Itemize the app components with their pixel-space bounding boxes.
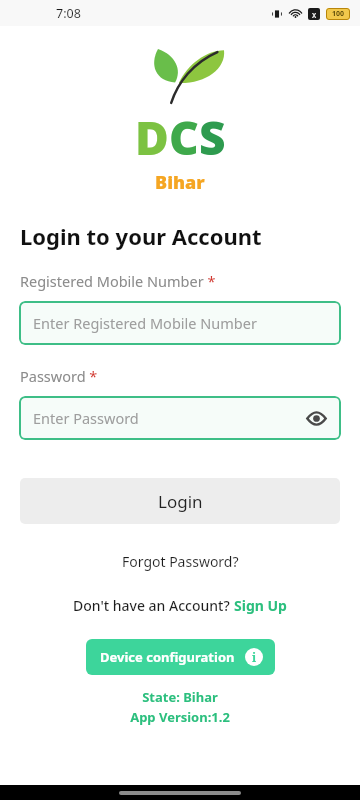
staticText: i [252, 649, 257, 665]
staticText: Login to your Account [20, 221, 262, 251]
staticText: 100 [332, 9, 345, 19]
staticText: Registered Mobile Number * [20, 271, 216, 291]
button[interactable]: Login [20, 478, 340, 524]
staticText: Don't have an Account? [73, 596, 234, 615]
button[interactable]: Enter Password [19, 396, 341, 440]
button[interactable]: Don't have an Account? [65, 592, 295, 619]
staticText: Bihar [155, 170, 205, 195]
staticText: 7:08 [56, 5, 81, 22]
staticText: State: Bihar [0, 688, 360, 706]
staticText: x [312, 9, 317, 20]
staticText: C [169, 106, 199, 169]
staticText: Password * [20, 366, 98, 386]
button[interactable]: Show password [303, 405, 329, 431]
button[interactable]: Enter Registered Mobile Number [19, 301, 341, 345]
staticText: Device configuration [100, 648, 235, 666]
staticText: Sign Up [234, 596, 287, 615]
button[interactable]: Device configuration [86, 639, 275, 675]
staticText: App Version:1.2 [0, 708, 360, 726]
staticText: Enter Registered Mobile Number [33, 313, 257, 333]
button[interactable]: Forgot Password? [116, 546, 245, 577]
staticText: D [135, 106, 169, 169]
staticText: S [199, 106, 226, 169]
staticText: Login [158, 490, 203, 513]
staticText: Enter Password [33, 408, 139, 428]
